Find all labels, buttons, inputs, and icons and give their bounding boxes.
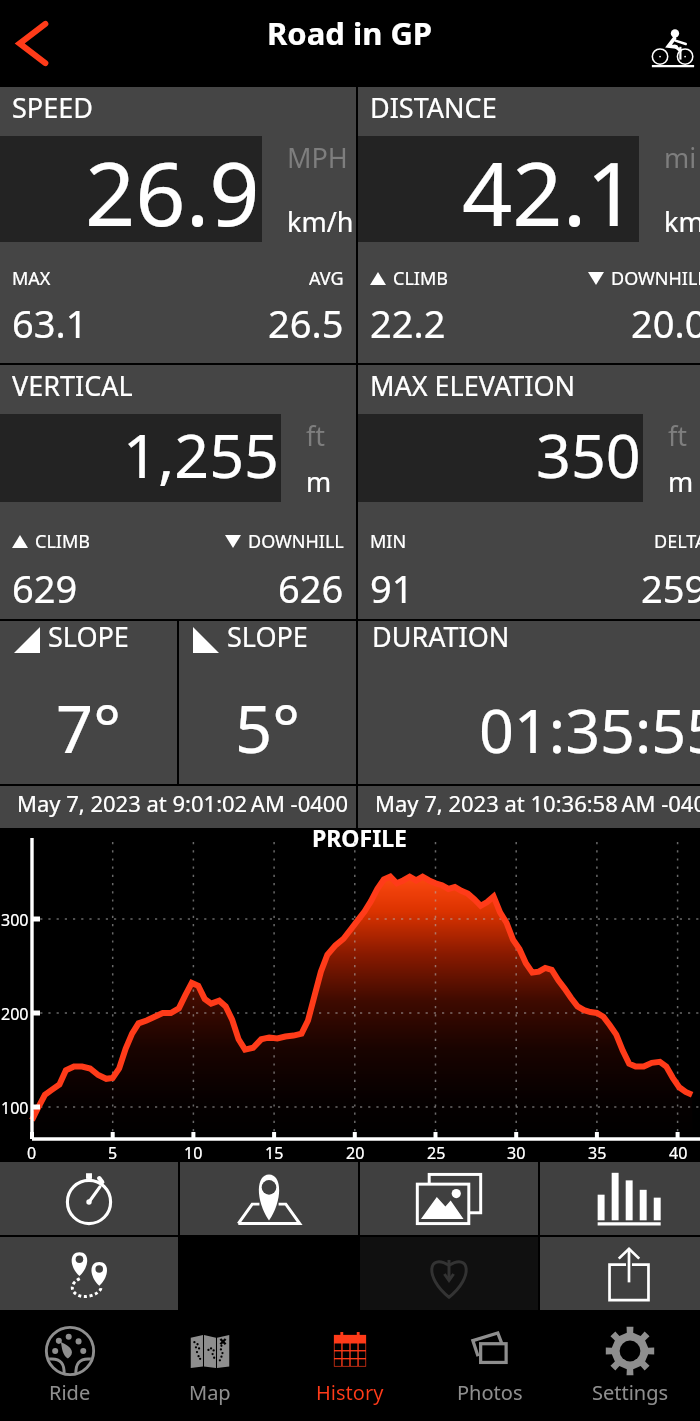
staticText: 5	[108, 1142, 118, 1164]
staticText: PROFILE	[312, 822, 407, 853]
staticText: 25	[427, 1142, 446, 1164]
button[interactable]: DURATION	[358, 621, 700, 784]
staticText: Photos	[457, 1379, 523, 1406]
staticText: May 7, 2023 at 10:36:58 AM -0400	[375, 788, 700, 818]
staticText: 15	[265, 1142, 284, 1164]
staticText: 01:35:55	[479, 688, 700, 771]
staticText: m	[668, 463, 694, 500]
staticText: 20	[346, 1142, 365, 1164]
button[interactable]: Activity type	[638, 17, 700, 79]
staticText: mi	[664, 139, 697, 176]
staticText: CLIMB	[35, 529, 90, 554]
staticText: 91	[370, 562, 414, 614]
button[interactable]: VERTICAL	[0, 365, 356, 619]
staticText: SLOPE	[227, 618, 308, 655]
button[interactable]: SLOPE	[179, 621, 356, 784]
button[interactable]: Charts	[540, 1162, 700, 1235]
staticText: 30	[507, 1142, 526, 1164]
button[interactable]: Map	[180, 1162, 358, 1235]
staticText: 42.1	[462, 132, 637, 238]
staticText: MAX	[12, 266, 51, 291]
staticText: 200	[1, 1003, 29, 1025]
staticText: VERTICAL	[12, 367, 133, 404]
button[interactable]: SLOPE	[0, 621, 177, 784]
staticText: 259	[641, 562, 700, 614]
staticText: 5°	[235, 684, 301, 773]
staticText: 0	[27, 1142, 37, 1164]
staticText: DELTA	[654, 529, 700, 554]
button[interactable]: Share	[540, 1237, 700, 1310]
staticText: DURATION	[372, 618, 510, 655]
staticText: Ride	[49, 1379, 91, 1406]
button[interactable]: Route	[0, 1237, 178, 1310]
staticText: 20.0	[631, 297, 700, 349]
staticText: km/h	[287, 203, 354, 240]
staticText: 350	[536, 413, 641, 496]
staticText: SLOPE	[48, 618, 129, 655]
button[interactable]: Stopwatch	[0, 1162, 178, 1235]
staticText: 40	[669, 1142, 688, 1164]
staticText: 22.2	[370, 297, 446, 349]
staticText: Settings	[592, 1379, 669, 1406]
button[interactable]: DISTANCE	[358, 87, 700, 363]
staticText: MIN	[370, 529, 407, 554]
staticText: 1,255	[123, 413, 279, 496]
staticText: 35	[588, 1142, 607, 1164]
staticText: m	[306, 463, 332, 500]
staticText: 7°	[56, 684, 122, 773]
staticText: AVG	[309, 266, 344, 291]
button[interactable]: Ride	[0, 1310, 140, 1421]
staticText: ft	[306, 417, 326, 454]
staticText: ft	[668, 417, 688, 454]
staticText: DOWNHILL	[611, 266, 700, 291]
staticText: History	[316, 1379, 384, 1406]
staticText: 626	[278, 562, 344, 614]
staticText: SPEED	[12, 89, 93, 126]
staticText: Map	[189, 1379, 231, 1406]
button[interactable]: History	[280, 1310, 420, 1421]
button[interactable]: Map	[140, 1310, 280, 1421]
button[interactable]: Settings	[560, 1310, 700, 1421]
button[interactable]: MAX ELEVATION	[358, 365, 700, 619]
button[interactable]: Save	[360, 1237, 538, 1310]
button[interactable]: Photos	[420, 1310, 560, 1421]
button[interactable]: Back	[0, 4, 62, 82]
staticText: 100	[1, 1097, 29, 1119]
staticText: Road in GP	[267, 12, 433, 54]
button[interactable]: SPEED	[0, 87, 356, 363]
staticText: MAX ELEVATION	[370, 367, 576, 404]
staticText: 26.5	[268, 297, 344, 349]
staticText: DISTANCE	[370, 89, 497, 126]
staticText: MPH	[287, 139, 348, 176]
button[interactable]: Photos	[360, 1162, 538, 1235]
staticText: 26.9	[85, 132, 260, 238]
staticText: 629	[12, 562, 78, 614]
staticText: CLIMB	[393, 266, 448, 291]
staticText: May 7, 2023 at 9:01:02 AM -0400	[17, 788, 349, 818]
staticText: 300	[1, 909, 29, 931]
staticText: 10	[184, 1142, 203, 1164]
staticText: km	[664, 203, 700, 240]
staticText: 63.1	[12, 297, 88, 349]
staticText: DOWNHILL	[248, 529, 344, 554]
